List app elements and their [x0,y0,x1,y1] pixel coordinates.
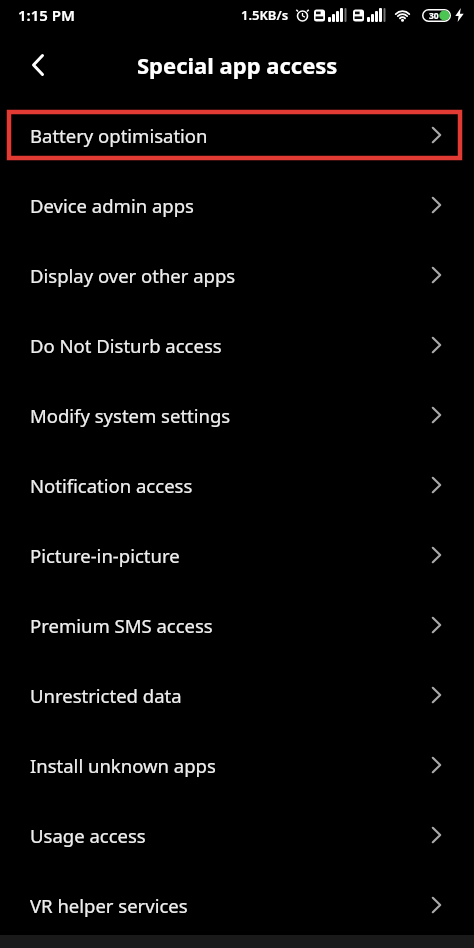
staticText: Notification access [30,473,432,498]
staticText: Install unknown apps [30,753,432,778]
button[interactable]: Premium SMS access [0,590,474,660]
staticText: Display over other apps [30,263,432,288]
button[interactable]: Do Not Disturb access [0,310,474,380]
staticText: Do Not Disturb access [30,333,432,358]
staticText: Special app access [137,50,338,80]
button[interactable]: Notification access [0,450,474,520]
button[interactable]: VR helper services [0,870,474,940]
staticText: Premium SMS access [30,613,432,638]
button[interactable]: Modify system settings [0,380,474,450]
staticText: Unrestricted data [30,683,432,708]
button[interactable] [24,51,52,79]
staticText: Picture-in-picture [30,543,432,568]
staticText: 1:15 PM [18,5,75,25]
staticText: Battery optimisation [30,123,432,148]
staticText: Usage access [30,823,432,848]
button[interactable]: Picture-in-picture [0,520,474,590]
button[interactable]: Install unknown apps [0,730,474,800]
staticText: Modify system settings [30,403,432,428]
staticText: VR helper services [30,893,432,918]
button[interactable]: Device admin apps [0,170,474,240]
button[interactable]: Usage access [0,800,474,870]
staticText: 1.5KB/s [241,6,289,24]
staticText: Device admin apps [30,193,432,218]
button[interactable]: Display over other apps [0,240,474,310]
button[interactable]: Battery optimisation [0,100,474,170]
button[interactable]: Unrestricted data [0,660,474,730]
staticText: 30 [429,10,439,22]
